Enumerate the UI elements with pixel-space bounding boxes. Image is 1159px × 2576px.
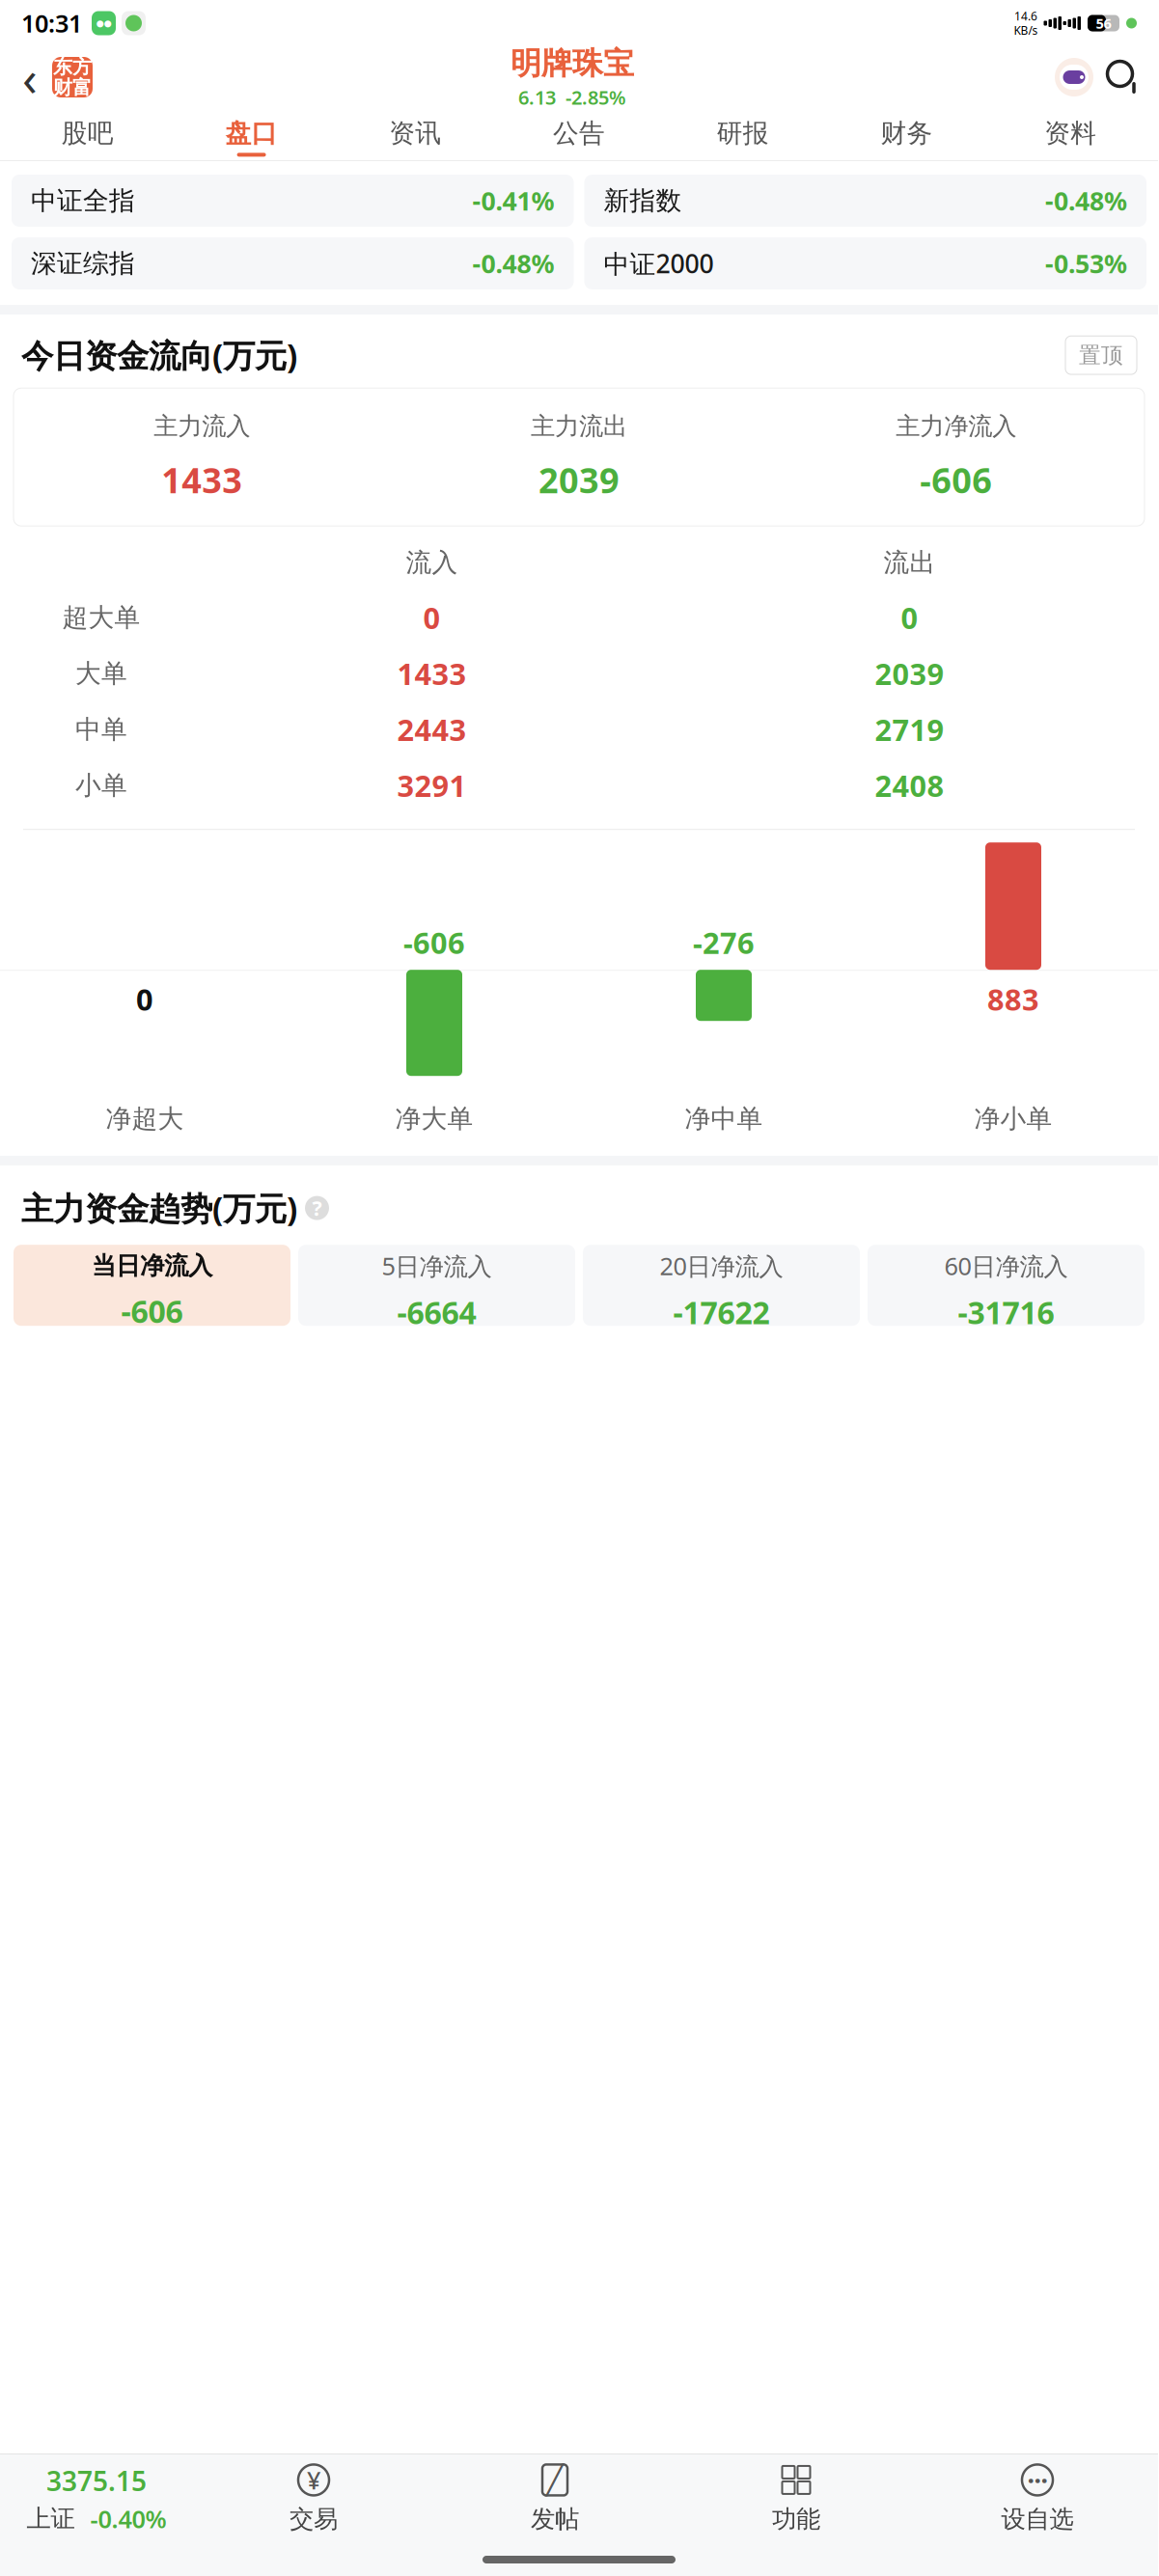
button[interactable]: 当日净流入	[14, 1245, 290, 1326]
staticText: 超大单	[62, 602, 140, 633]
staticText: 置顶	[1079, 342, 1123, 369]
staticText: 流入	[406, 547, 458, 578]
staticText: 1433	[397, 654, 467, 693]
staticText: 2039	[538, 457, 620, 503]
staticText: ●●	[96, 18, 111, 28]
button[interactable]: 功能	[676, 2454, 917, 2543]
staticText: 60日净流入	[944, 1250, 1068, 1282]
staticText: 上证	[27, 2504, 75, 2534]
staticText: 10:31	[21, 7, 82, 39]
staticText: 56	[1096, 14, 1111, 33]
staticText: 0	[423, 598, 441, 637]
staticText: -17622	[673, 1292, 770, 1333]
staticText: KB/s	[1014, 23, 1038, 38]
button[interactable]: ¥	[193, 2454, 434, 2543]
staticText: 明牌珠宝	[511, 44, 634, 82]
staticText: -276	[693, 923, 755, 962]
staticText: 20日净流入	[660, 1250, 783, 1282]
staticText: 中证全指	[31, 185, 135, 216]
button[interactable]: ···	[917, 2454, 1158, 2543]
staticText: 大单	[75, 658, 127, 689]
staticText: 主力资金趋势(万元)	[21, 1187, 297, 1229]
staticText: 东方	[53, 55, 92, 79]
button[interactable]: AI assistant	[1052, 55, 1096, 99]
staticText: 2443	[397, 710, 467, 749]
staticText: 6.13	[518, 84, 556, 110]
staticText: 发帖	[531, 2504, 579, 2534]
staticText: ╱	[546, 2464, 564, 2496]
staticText: 883	[987, 979, 1039, 1019]
staticText: 2719	[875, 710, 944, 749]
button[interactable]: Help	[305, 1196, 329, 1220]
staticText: ‹	[22, 45, 38, 110]
button[interactable]: 深证综指	[12, 237, 574, 289]
staticText: 财富	[53, 76, 92, 99]
staticText: 功能	[772, 2504, 820, 2534]
staticText: -0.48%	[472, 246, 554, 280]
staticText: -606	[403, 923, 465, 962]
staticText: 3375.15	[46, 2463, 147, 2499]
button[interactable]: 3375.15	[0, 2454, 193, 2543]
button[interactable]: 中证2000	[584, 237, 1146, 289]
staticText: 流出	[883, 547, 936, 578]
staticText: ···	[1027, 2463, 1048, 2497]
staticText: -0.53%	[1045, 246, 1127, 280]
staticText: 0	[136, 979, 153, 1019]
staticText: ¥	[307, 2464, 320, 2496]
staticText: 盘口	[225, 117, 278, 149]
button[interactable]: 财务	[825, 108, 988, 160]
button[interactable]: 盘口	[170, 108, 333, 160]
staticText: 研报	[717, 117, 769, 149]
staticText: 股吧	[62, 117, 114, 149]
button[interactable]: 新指数	[584, 175, 1146, 227]
staticText: 深证综指	[31, 248, 135, 279]
staticText: -0.40%	[90, 2502, 166, 2535]
staticText: 当日净流入	[92, 1251, 212, 1281]
staticText: -0.48%	[1045, 184, 1127, 218]
staticText: 1433	[161, 457, 243, 503]
button[interactable]: 20日净流入	[583, 1245, 860, 1326]
staticText: 小单	[75, 770, 127, 801]
staticText: -606	[121, 1290, 183, 1331]
button[interactable]: 研报	[661, 108, 825, 160]
button[interactable]: 中证全指	[12, 175, 574, 227]
staticText: -0.41%	[472, 184, 554, 218]
button[interactable]: Back	[14, 56, 46, 98]
button[interactable]: 置顶	[1065, 336, 1137, 374]
staticText: 资讯	[389, 117, 441, 149]
staticText: 净中单	[685, 1103, 763, 1135]
staticText: -606	[920, 457, 992, 503]
button[interactable]: 资讯	[333, 108, 497, 160]
staticText: 净大单	[395, 1103, 473, 1135]
staticText: 主力流入	[154, 411, 250, 441]
button[interactable]: 股吧	[6, 108, 170, 160]
staticText: 3291	[397, 766, 467, 805]
staticText: 主力净流入	[896, 411, 1016, 441]
staticText: 净小单	[974, 1103, 1052, 1135]
staticText: 今日资金流向(万元)	[21, 334, 297, 377]
staticText: -2.85%	[566, 84, 626, 110]
button[interactable]: 公告	[497, 108, 661, 160]
button[interactable]: 资料	[988, 108, 1152, 160]
staticText: 中证2000	[604, 246, 714, 280]
button[interactable]: ╱	[434, 2454, 676, 2543]
button[interactable]: 5日净流入	[298, 1245, 575, 1326]
staticText: 主力流出	[531, 411, 627, 441]
button[interactable]: 60日净流入	[868, 1245, 1145, 1326]
staticText: 14.6	[1014, 8, 1037, 24]
staticText: -6664	[397, 1292, 476, 1333]
staticText: 2039	[875, 654, 944, 693]
button[interactable]: Search	[1102, 56, 1145, 98]
staticText: 交易	[290, 2504, 338, 2534]
staticText: -31716	[958, 1292, 1054, 1333]
staticText: 资料	[1044, 117, 1096, 149]
staticText: 5日净流入	[382, 1250, 492, 1282]
staticText: 新指数	[604, 185, 682, 216]
staticText: 设自选	[1001, 2504, 1074, 2534]
staticText: ?	[312, 1194, 322, 1222]
staticText: 净超大	[106, 1103, 184, 1135]
staticText: 公告	[553, 117, 605, 149]
staticText: 0	[901, 598, 918, 637]
staticText: 中单	[75, 714, 127, 745]
staticText: 2408	[875, 766, 944, 805]
